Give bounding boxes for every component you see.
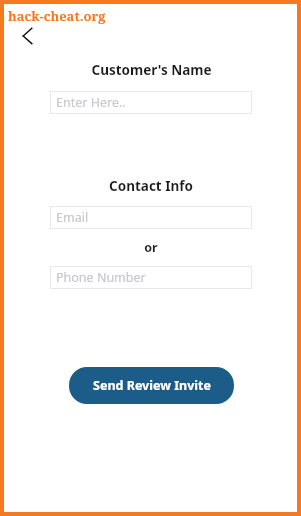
staticText: or <box>144 239 158 256</box>
staticText: Send Review Invite <box>93 377 211 394</box>
button[interactable]: Phone Number <box>50 266 252 289</box>
staticText: Email <box>56 209 89 226</box>
staticText: Customer's Name <box>91 61 212 79</box>
button[interactable]: Email <box>50 206 252 229</box>
staticText: hack-cheat.org <box>8 7 106 25</box>
staticText: Enter Here.. <box>56 94 126 111</box>
button[interactable]: Back <box>16 24 40 48</box>
button[interactable]: Send Review Invite <box>69 367 234 404</box>
staticText: Phone Number <box>56 269 146 286</box>
button[interactable]: Enter Here.. <box>50 91 252 114</box>
staticText: Contact Info <box>109 177 193 195</box>
